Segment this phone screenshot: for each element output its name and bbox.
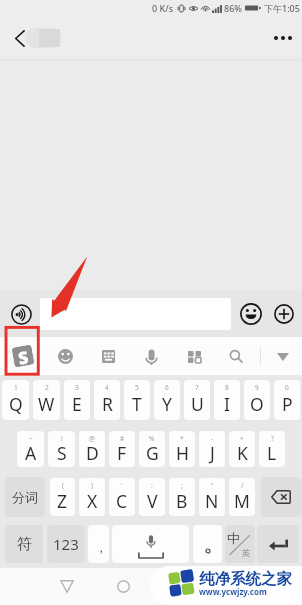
staticText: 中 [227,530,240,546]
staticText: 9 [255,383,259,392]
staticText: R [102,392,113,416]
button[interactable]: 9 [244,380,270,420]
button[interactable]: ' [109,478,135,516]
button[interactable]: + [229,431,255,467]
button[interactable]: ? [259,431,285,467]
button[interactable]: More options [268,23,298,53]
button[interactable]: ) [79,478,105,516]
staticText: B [176,489,188,513]
staticText: ~ [29,434,33,443]
staticText: 86% [224,2,242,14]
button[interactable]: Keyboard layout [95,343,122,370]
staticText: O [250,392,264,416]
button[interactable]: 1 [2,380,29,420]
button[interactable]: Emoji panel [52,343,79,370]
staticText: 6 [165,383,169,392]
staticText: C [116,489,128,513]
button[interactable]: Back [4,23,34,53]
button[interactable]: % [139,431,165,467]
staticText: ? [271,434,274,443]
button[interactable]: Hide keyboard [269,343,296,370]
staticText: S [57,441,67,465]
button[interactable]: 3 [64,380,90,420]
staticText: ' [121,481,123,490]
button[interactable]: / [229,478,255,516]
button[interactable]: Period [193,525,222,563]
button[interactable]: Numbers [47,525,85,563]
staticText: L [267,441,277,465]
button[interactable]: @ [79,431,105,467]
staticText: F [117,441,127,465]
staticText: G [146,441,159,465]
button[interactable]: " [199,478,225,516]
staticText: N [205,489,219,513]
button[interactable]: Comma [88,525,109,563]
button[interactable]: Word segmentation [5,477,45,517]
staticText: * [180,434,184,443]
button[interactable]: 8 [214,380,240,420]
button[interactable]: ~ [17,431,44,467]
button[interactable]: * [169,431,195,467]
staticText: : [151,481,153,490]
button[interactable]: Emoji [235,298,266,329]
staticText: 2 [45,383,49,392]
button[interactable]: Search [223,343,250,370]
button[interactable]: Sogou input settings [8,341,37,370]
staticText: P [282,392,293,416]
staticText: ( [62,481,64,490]
button[interactable]: Voice input [138,343,165,370]
staticText: ) [91,481,93,490]
button[interactable]: ( [50,478,75,516]
staticText: 符 [17,535,32,554]
staticText: 4 [105,383,109,392]
button[interactable]: : [139,478,165,516]
staticText: 123 [53,534,79,554]
button[interactable] [40,298,231,330]
staticText: www.ycwjzy.com [199,586,267,597]
button[interactable]: ; [169,478,195,516]
button[interactable]: Enter [257,525,299,563]
staticText: D [86,441,99,465]
button[interactable]: Home [105,568,141,605]
button[interactable]: 6 [154,380,180,420]
staticText: I [224,392,230,416]
button[interactable]: More tools [181,343,208,370]
staticText: 7 [195,383,199,392]
staticText: Y [162,392,172,416]
staticText: Z [57,489,68,513]
staticText: # [120,434,125,443]
staticText: 下午1:05 [264,2,300,14]
staticText: S [16,345,30,367]
staticText: Q [9,392,23,416]
staticText: X [87,489,98,513]
staticText: U [191,392,204,416]
button[interactable]: ! [48,431,75,467]
button[interactable]: Add attachment [269,299,299,329]
staticText: + [240,434,244,443]
button[interactable]: Space [112,525,189,563]
staticText: @ [89,434,95,443]
staticText: K [237,441,248,465]
button[interactable]: Voice input [6,299,36,329]
staticText: 3 [75,383,79,392]
button[interactable]: Backspace [261,477,301,517]
staticText: / [241,481,244,490]
button[interactable]: 4 [94,380,120,420]
button[interactable]: # [109,431,135,467]
staticText: 5 [135,383,139,392]
button[interactable]: Back [49,568,85,605]
staticText: ! [61,434,63,443]
staticText: W [38,392,55,416]
staticText: A [25,441,37,465]
button[interactable]: Recent apps [162,568,198,605]
staticText: 英 [242,548,251,559]
button[interactable]: 0 [274,380,300,420]
button[interactable]: Chinese English toggle [225,525,255,563]
button[interactable]: Symbols [5,525,43,563]
staticText: M [234,489,250,513]
staticText: 纯净系统之家 [199,569,292,589]
button[interactable]: 2 [33,380,60,420]
button[interactable]: 5 [124,380,150,420]
button[interactable]: - [199,431,225,467]
button[interactable]: 7 [184,380,210,420]
